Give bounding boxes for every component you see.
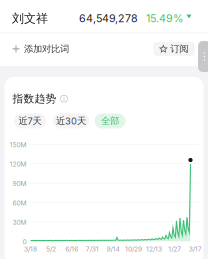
button[interactable]: 近30天: [53, 113, 89, 128]
staticText: 指数趋势: [12, 92, 56, 105]
staticText: 订阅: [170, 43, 188, 55]
button[interactable]: 近7天: [14, 113, 46, 128]
staticText: 9/14: [106, 245, 119, 253]
staticText: 150M: [9, 141, 26, 149]
staticText: 12/13: [146, 245, 162, 253]
staticText: 0: [22, 238, 26, 246]
staticText: 刘文祥: [12, 11, 48, 26]
staticText: 全部: [101, 115, 119, 127]
staticText: 添加对比词: [24, 43, 69, 55]
staticText: 10/29: [125, 245, 142, 253]
staticText: 近30天: [56, 115, 86, 127]
staticText: 7/31: [86, 245, 99, 253]
staticText: 6/16: [65, 245, 78, 253]
staticText: 15.49%: [146, 12, 183, 25]
staticText: 1/27: [168, 245, 181, 253]
staticText: 近7天: [18, 115, 41, 127]
staticText: 3/17: [189, 245, 202, 253]
button[interactable]: 添加对比词: [0, 35, 79, 63]
staticText: 90M: [12, 179, 26, 188]
staticText: 5/2: [46, 245, 56, 253]
staticText: 60M: [12, 199, 26, 207]
staticText: 30M: [12, 218, 26, 226]
staticText: 120M: [9, 160, 26, 168]
button[interactable]: 全部: [94, 113, 125, 128]
button[interactable]: 订阅: [153, 42, 194, 56]
staticText: 64,549,278: [79, 12, 138, 25]
button[interactable]: More: [198, 41, 208, 72]
staticText: 3/18: [24, 245, 37, 253]
